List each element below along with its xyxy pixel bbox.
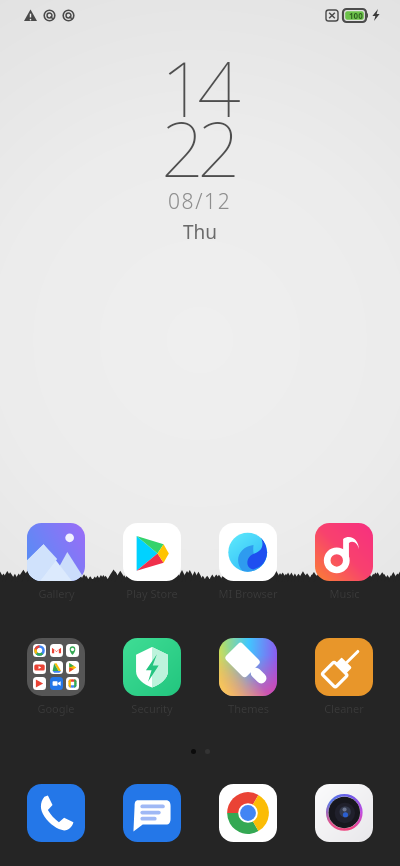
button[interactable]: Phone (12, 784, 100, 842)
button[interactable]: Gallery (12, 523, 100, 601)
staticText: 14 (161, 36, 234, 140)
staticText: Cleaner (324, 701, 364, 716)
button[interactable]: Cleaner (300, 638, 388, 716)
staticText: 22 (161, 96, 234, 200)
button[interactable]: Google (12, 638, 100, 716)
button[interactable]: Security (108, 638, 196, 716)
button[interactable]: Themes (204, 638, 292, 716)
button[interactable]: Messages (108, 784, 196, 842)
button[interactable]: Camera (300, 784, 388, 842)
staticText: Gallery (38, 586, 75, 601)
staticText: 08/12 (168, 187, 232, 216)
button[interactable]: Music (300, 523, 388, 601)
button[interactable]: MI Browser (204, 523, 292, 601)
staticText: MI Browser (218, 586, 278, 601)
staticText: 100 (349, 10, 363, 21)
button[interactable]: Chrome (204, 784, 292, 842)
staticText: Themes (228, 701, 269, 716)
staticText: Security (131, 701, 173, 716)
staticText: Google (37, 701, 75, 716)
staticText: Thu (183, 219, 218, 245)
staticText: Music (329, 586, 360, 601)
button[interactable]: Play Store (108, 523, 196, 601)
staticText: Play Store (126, 586, 178, 601)
